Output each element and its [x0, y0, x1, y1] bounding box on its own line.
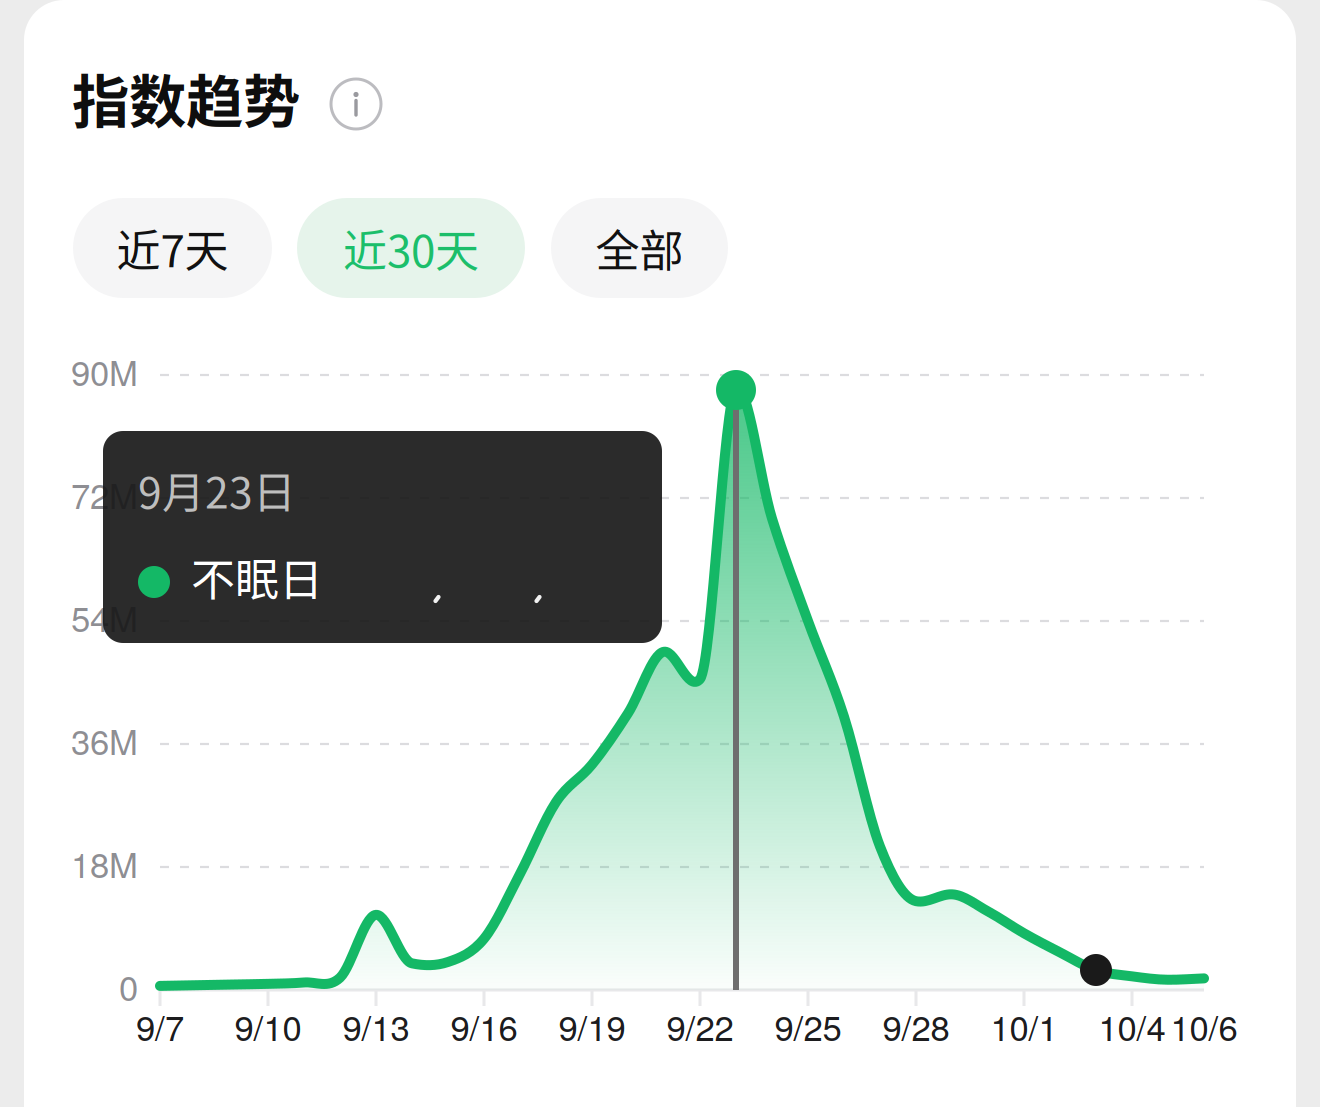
button[interactable]: 近7天 [73, 198, 272, 298]
staticText: 9/16 [450, 1001, 517, 1051]
staticText: 9/28 [882, 1001, 949, 1051]
staticText: 10/6 [1170, 1001, 1237, 1051]
staticText: 9/10 [234, 1001, 301, 1051]
staticText: 36M [71, 715, 138, 765]
staticText: 9/7 [136, 1001, 184, 1051]
button[interactable]: 全部 [551, 198, 728, 298]
staticText: 不眠日 [191, 545, 323, 609]
staticText: 90M [71, 346, 138, 396]
staticText: 72M [71, 469, 138, 519]
staticText: 10/1 [990, 1001, 1057, 1051]
staticText: 9月23日 [138, 459, 296, 521]
staticText: 9/19 [558, 1001, 625, 1051]
staticText: 近30天 [343, 216, 479, 280]
staticText: 30,767,512 [393, 547, 591, 604]
staticText: 9/22 [666, 1001, 733, 1051]
staticText: 18M [71, 838, 138, 888]
staticText: 0 [119, 961, 138, 1011]
staticText: 10/4 [1098, 1001, 1165, 1051]
staticText: 9/25 [774, 1001, 841, 1051]
button[interactable]: 关于指数趋势 [331, 79, 381, 129]
staticText: 54M [71, 592, 138, 642]
button[interactable]: 近30天 [297, 198, 525, 298]
staticText: 近7天 [116, 216, 228, 280]
staticText: 全部 [595, 216, 683, 280]
staticText: 9/13 [342, 1001, 409, 1051]
staticText: 指数趋势 [72, 56, 300, 139]
